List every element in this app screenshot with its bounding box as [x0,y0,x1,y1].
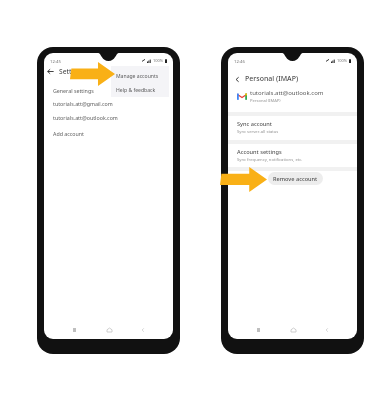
button[interactable]: Back [138,325,148,335]
button[interactable]: Account settings [228,146,357,164]
button[interactable]: tutorials.att@gmail.com [44,96,173,111]
staticText: Settings [59,67,85,76]
staticText: Help & feedback [116,87,156,94]
button[interactable]: Home [104,325,114,335]
staticText: tutorials.att@outlook.com [53,114,118,121]
staticText: Sync account [237,120,273,128]
button[interactable]: tutorials.att@outlook.com [44,110,173,125]
button[interactable]: General settings [44,83,173,98]
button[interactable]: Help & feedback [111,84,169,97]
button[interactable]: Recents [253,325,263,335]
button[interactable]: Remove account [268,172,323,185]
button[interactable]: Manage accounts [111,68,169,84]
staticText: General settings [53,87,94,94]
other: Back [47,68,54,75]
staticText: Personal (IMAP) [250,98,281,104]
staticText: Sync frequency, notifications, etc. [237,157,303,163]
button[interactable]: Recents [69,325,79,335]
staticText: Remove account [273,175,318,183]
staticText: 12:46 [234,58,245,64]
staticText: 100% [153,58,164,63]
staticText: tutorials.att@outlook.com [250,89,324,97]
staticText: 100% [337,58,348,63]
other: Back [234,76,241,83]
button[interactable]: Sync account [228,118,357,136]
staticText: Add account [53,130,84,137]
staticText: Sync server-all status [237,129,279,135]
staticText: tutorials.att@gmail.com [53,100,113,107]
button[interactable]: Back [228,72,357,86]
staticText: Manage accounts [116,73,159,80]
button[interactable]: tutorials.att@outlook.com [228,86,357,106]
button[interactable]: Add account [44,126,173,141]
staticText: Account settings [237,148,282,156]
button[interactable]: Home [288,325,298,335]
button[interactable]: Back [322,325,332,335]
staticText: 12:45 [50,58,61,64]
button[interactable]: Back [44,65,173,78]
staticText: Personal (IMAP) [245,74,299,84]
